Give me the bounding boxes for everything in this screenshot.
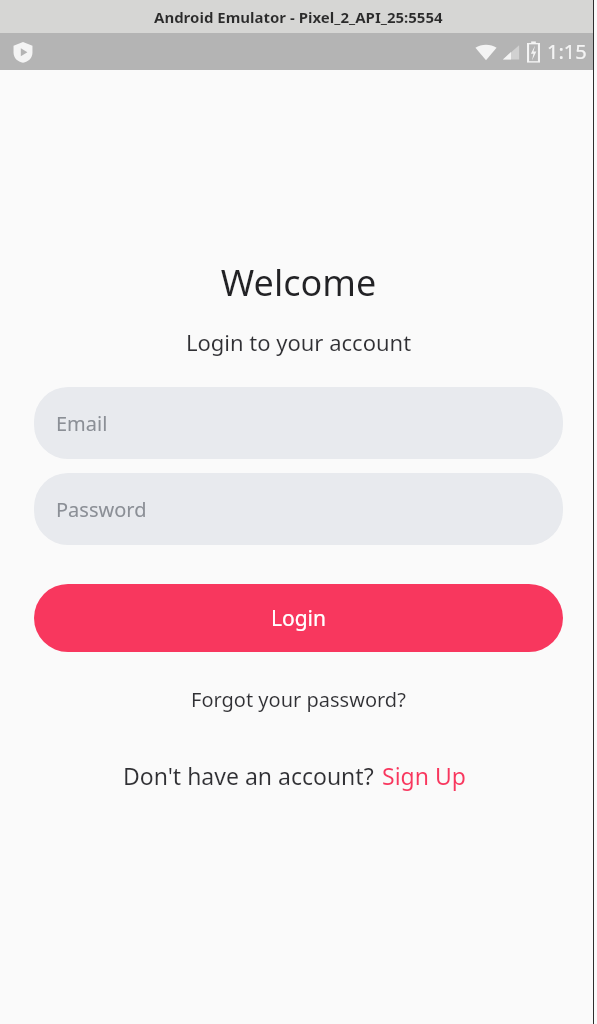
staticText: Don't have an account?	[123, 760, 374, 791]
staticText: Login to your account	[0, 327, 597, 357]
staticText: 1:15	[547, 38, 587, 65]
staticText: Welcome	[0, 258, 597, 307]
button[interactable]: Sign Up	[374, 756, 474, 795]
other: Protected app	[12, 41, 34, 63]
staticText: Password	[56, 496, 147, 523]
staticText: Forgot your password?	[191, 686, 406, 713]
staticText: Android Emulator - Pixel_2_API_25:5554	[154, 7, 443, 27]
staticText: Email	[56, 410, 108, 437]
button[interactable]: Email	[34, 387, 563, 459]
staticText: Login	[271, 604, 327, 633]
button[interactable]: Forgot your password?	[181, 681, 416, 718]
button[interactable]: Password	[34, 473, 563, 545]
staticText: Sign Up	[382, 760, 466, 791]
button[interactable]: Login	[34, 584, 563, 652]
